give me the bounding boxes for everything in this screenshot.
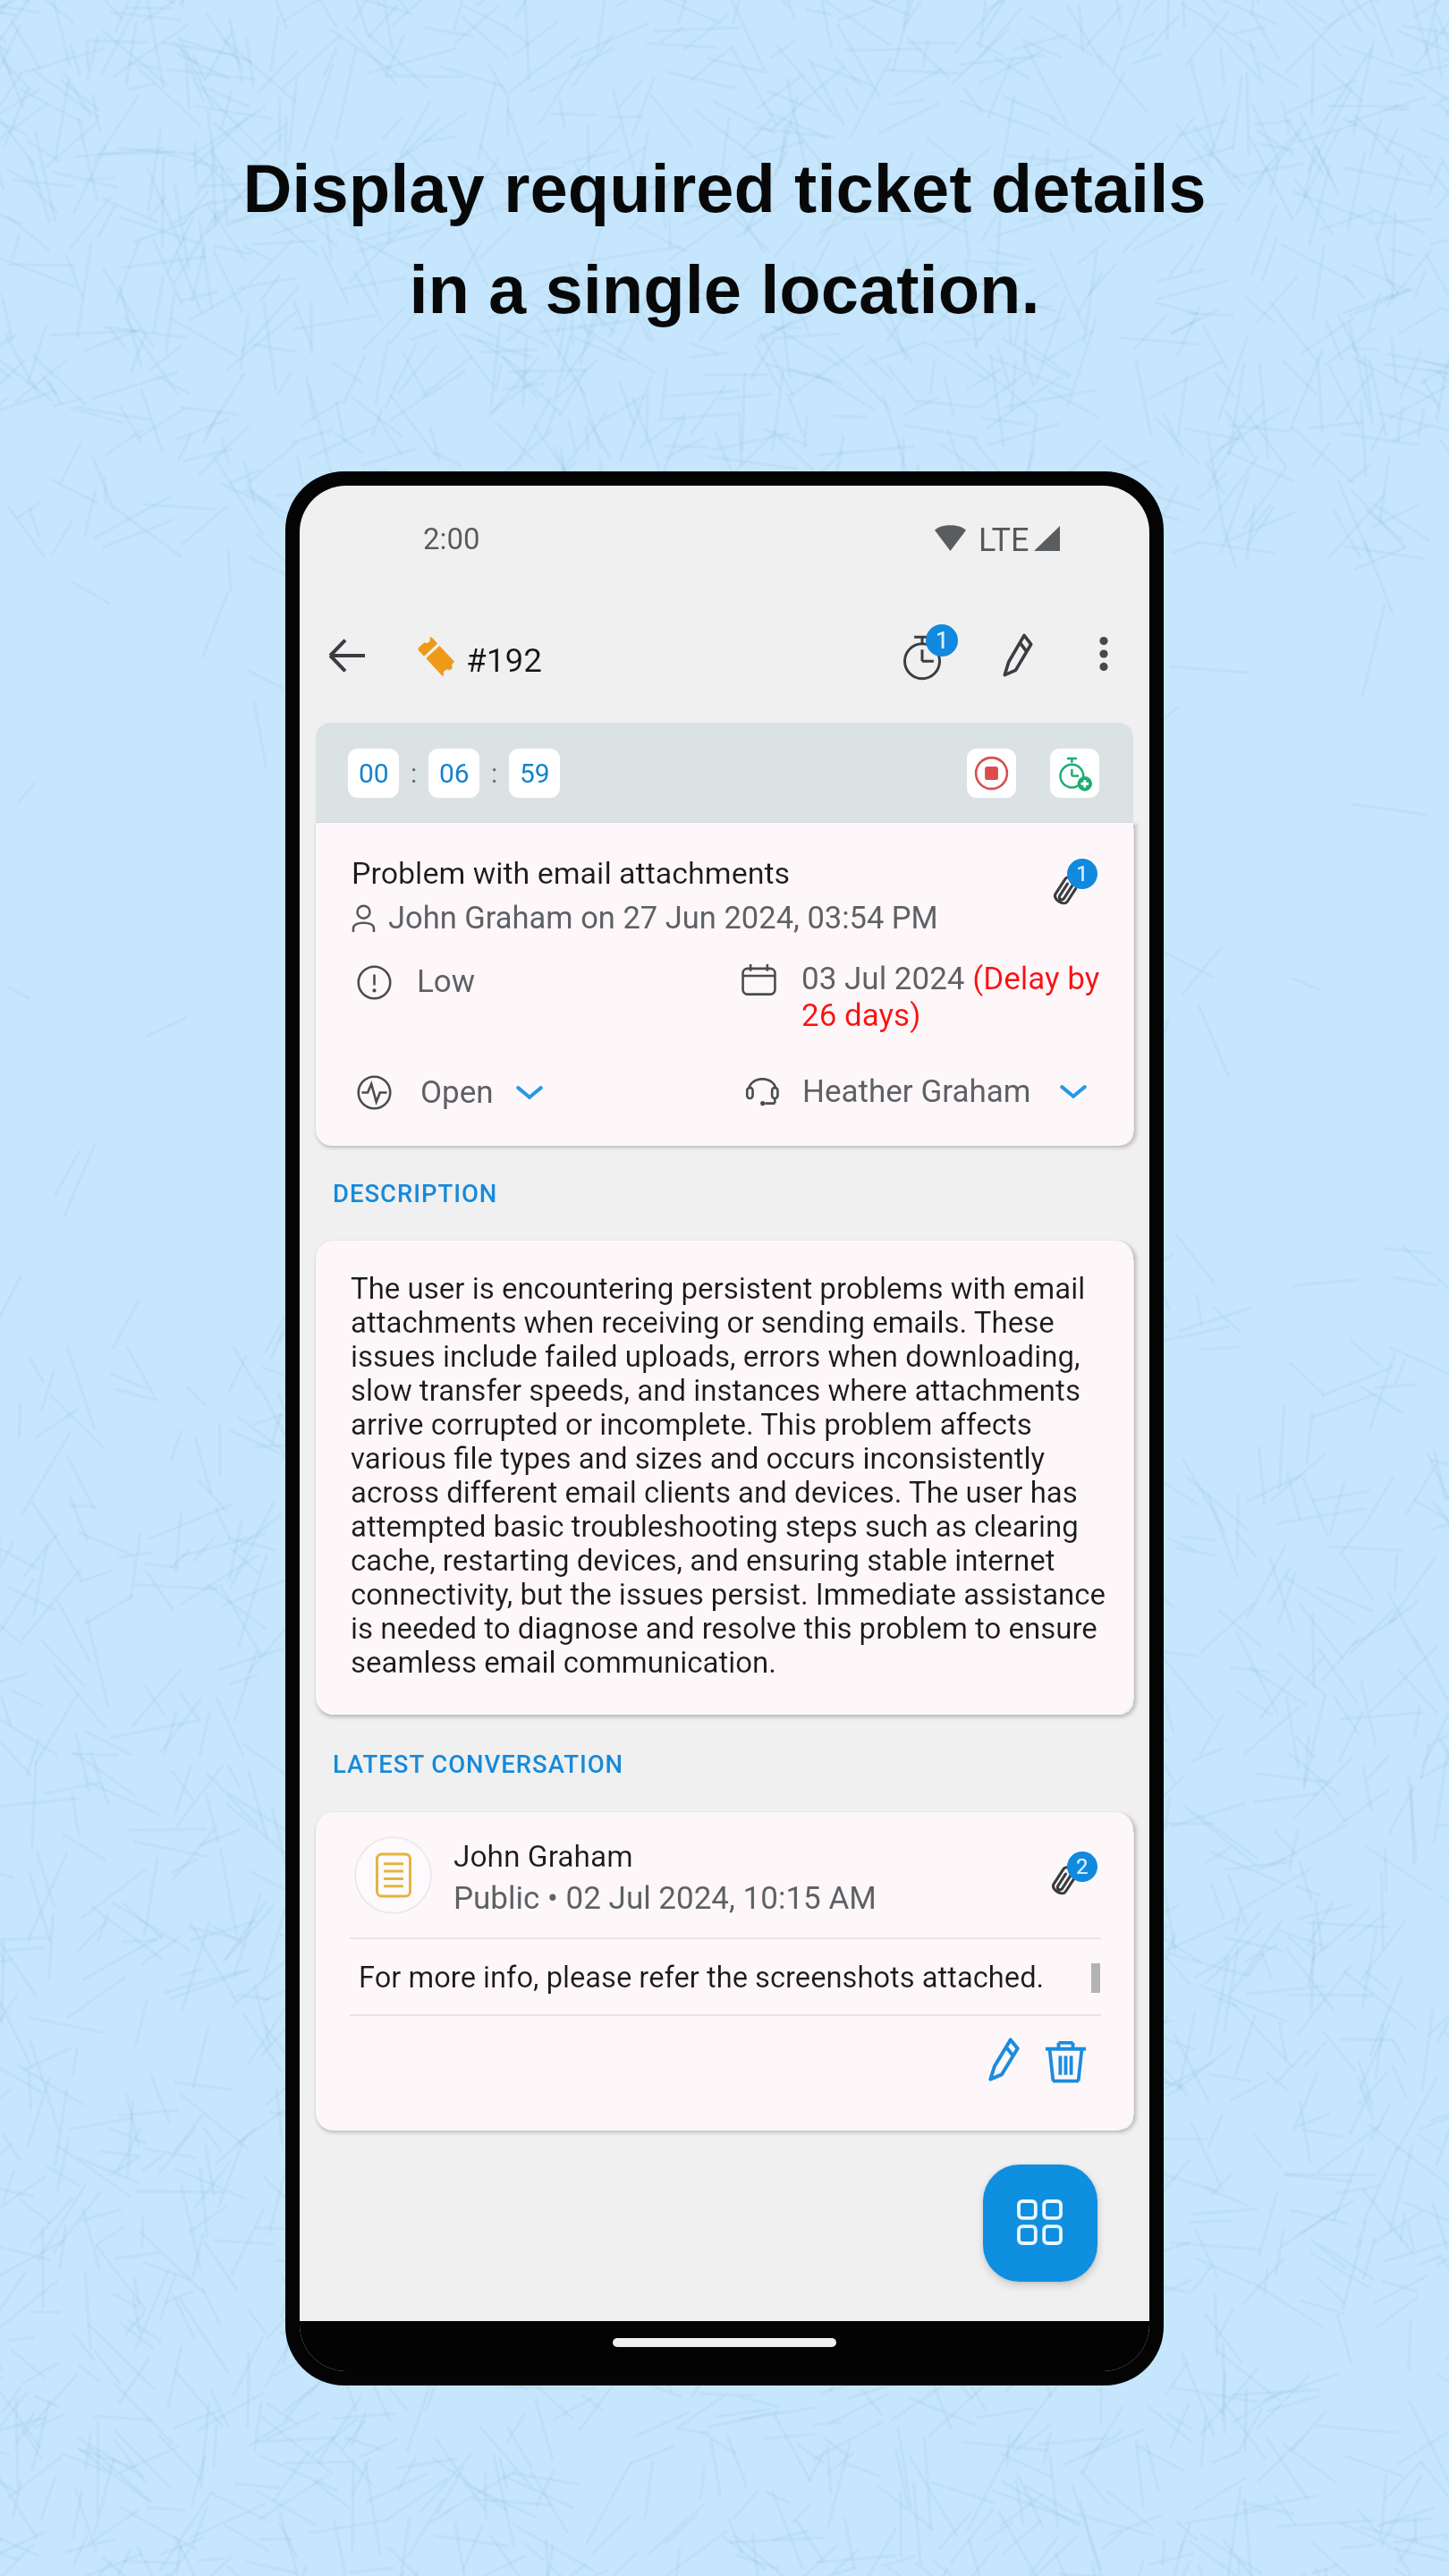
button[interactable]: Heather Graham [734, 1065, 1088, 1117]
staticText: 1 [1076, 861, 1089, 886]
staticText: John Graham [453, 1839, 633, 1874]
button[interactable]: Open [352, 1066, 544, 1118]
staticText: Problem with email attachments [352, 855, 791, 891]
staticText: #192 [466, 641, 543, 680]
staticText: 2:00 [423, 521, 480, 556]
staticText: The user is encountering persistent prob… [351, 1271, 1112, 1680]
staticText: Open [420, 1074, 494, 1111]
button[interactable]: Back [308, 616, 386, 695]
staticText: 2 [1076, 1854, 1089, 1879]
staticText: For more info, please refer the screensh… [359, 1961, 1045, 1995]
staticText: 59 [520, 758, 550, 789]
button[interactable]: Delete reply [1026, 2022, 1105, 2101]
button[interactable]: Edit reply [964, 2020, 1043, 2098]
staticText: Heather Graham [802, 1073, 1031, 1110]
staticText: LATEST CONVERSATION [333, 1750, 624, 1778]
staticText: 03 Jul 2024 (Delay by 26 days) [801, 961, 1110, 1033]
staticText: 06 [439, 758, 470, 789]
staticText: LTE [979, 521, 1030, 559]
button[interactable]: Stop timer [967, 749, 1016, 798]
staticText: 00 [359, 758, 389, 789]
button[interactable]: Time entries [876, 614, 965, 704]
staticText: 1 [936, 627, 949, 654]
staticText: John Graham on 27 Jun 2024, 03:54 PM [388, 900, 938, 936]
button[interactable]: Low [417, 963, 476, 1000]
staticText: : [491, 758, 498, 789]
staticText: : [411, 758, 418, 789]
button[interactable]: Add time entry [1050, 749, 1099, 798]
staticText: DESCRIPTION [333, 1179, 498, 1207]
staticText: Public • 02 Jul 2024, 10:15 AM [453, 1880, 877, 1917]
button[interactable]: Edit ticket [979, 615, 1057, 694]
button[interactable]: More options [1064, 614, 1143, 693]
button[interactable]: Modules [983, 2165, 1097, 2282]
staticText: Display required ticket details in a sin… [0, 150, 1449, 327]
